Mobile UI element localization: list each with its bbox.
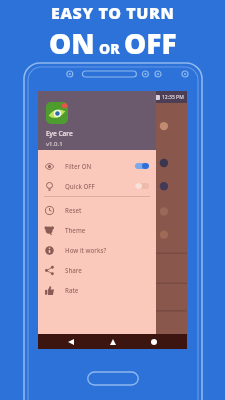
button[interactable]: Share	[38, 260, 156, 280]
button[interactable]: Reset	[38, 200, 156, 220]
staticText: v1.0.1	[46, 140, 63, 148]
button[interactable]: Recents	[145, 334, 163, 349]
button[interactable]: Rate	[38, 280, 156, 300]
staticText: Rate	[65, 286, 79, 294]
button[interactable]: Quick OFF	[38, 176, 156, 196]
staticText: 12:35 PM	[162, 94, 184, 101]
button[interactable]: Home	[104, 334, 122, 349]
staticText: Filter ON	[65, 162, 92, 170]
staticText: EASY TO TURN	[51, 2, 175, 24]
button[interactable]: Back	[62, 334, 80, 349]
staticText: Quick OFF	[65, 182, 95, 190]
staticText: OR	[99, 39, 120, 58]
staticText: Theme	[65, 226, 86, 234]
staticText: OFF	[124, 24, 177, 62]
button[interactable]: Filter ON	[38, 156, 156, 176]
staticText: Share	[65, 266, 82, 274]
staticText: Reset	[65, 206, 82, 214]
staticText: Eye Care	[46, 129, 73, 138]
button[interactable]: Theme	[38, 220, 156, 240]
button[interactable]: How it works?	[38, 240, 156, 260]
staticText: How it works?	[65, 246, 107, 254]
staticText: ON	[49, 24, 95, 62]
